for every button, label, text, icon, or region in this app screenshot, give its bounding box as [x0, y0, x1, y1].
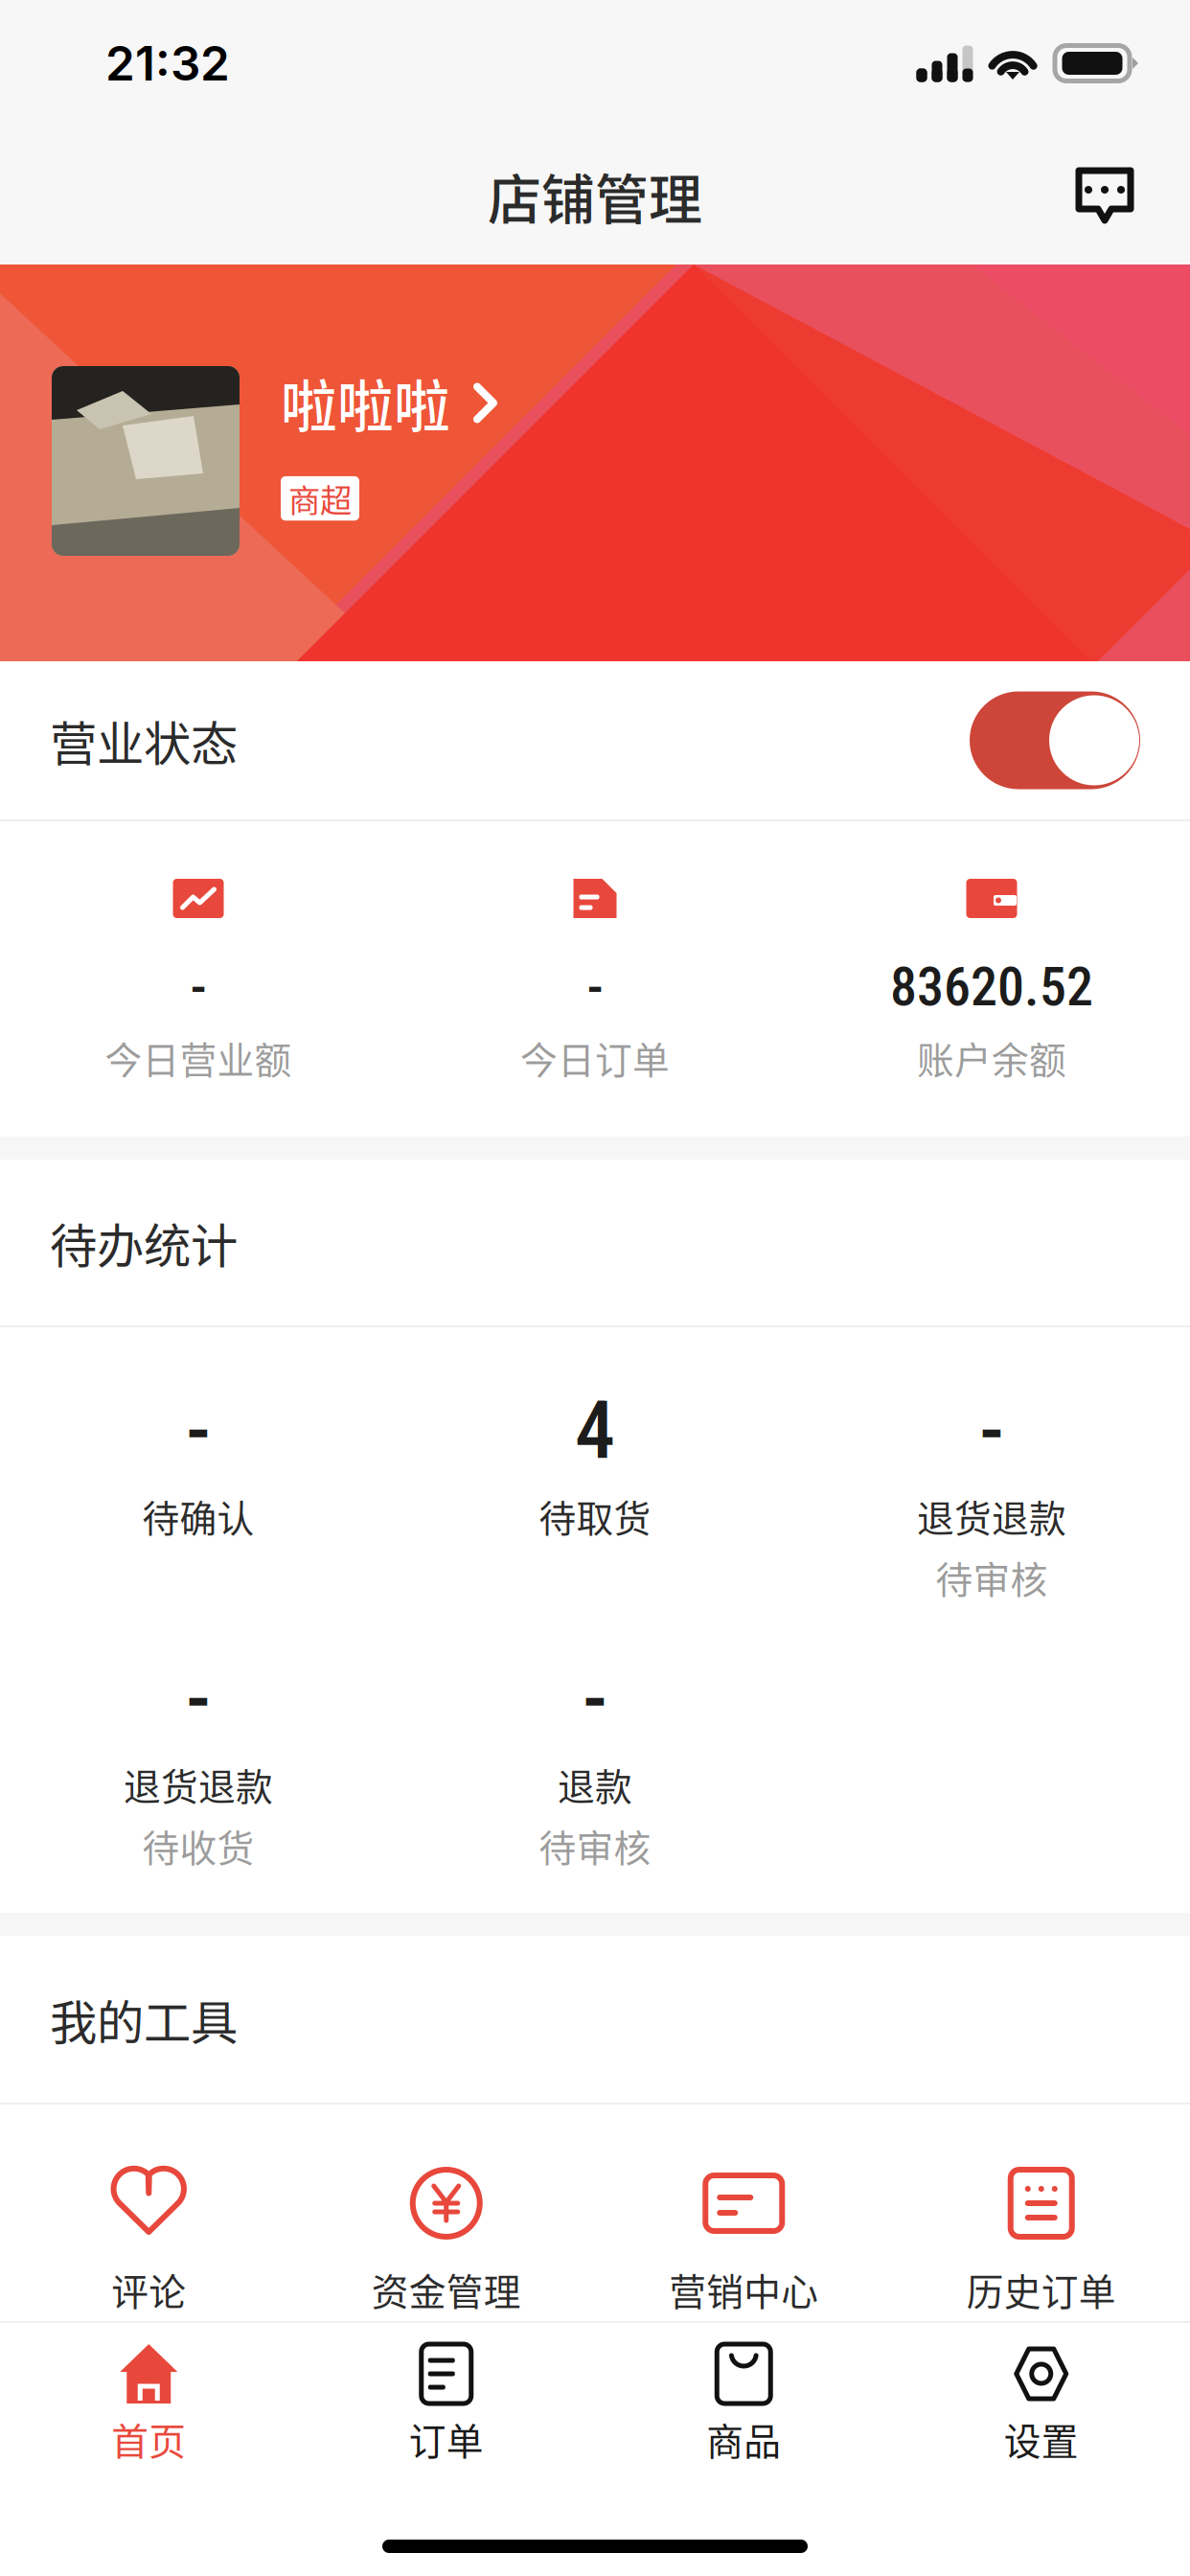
staticText: 退货退款: [124, 1758, 273, 1811]
button[interactable]: 设置: [892, 2323, 1190, 2497]
button[interactable]: 消息: [1048, 148, 1161, 243]
button[interactable]: -: [793, 1396, 1190, 1665]
staticText: 啦啦啦: [281, 362, 450, 444]
button[interactable]: 营业状态: [970, 691, 1140, 789]
staticText: 订单: [409, 2412, 484, 2466]
button[interactable]: 店铺头像: [52, 366, 240, 556]
button[interactable]: 啦啦啦: [281, 362, 497, 444]
staticText: 营业状态: [50, 706, 238, 775]
button[interactable]: -: [397, 821, 793, 1137]
staticText: 21:32: [105, 35, 230, 92]
staticText: 今日营业额: [105, 1031, 292, 1084]
staticText: 资金管理: [372, 2263, 521, 2316]
staticText: 待确认: [142, 1489, 254, 1543]
button[interactable]: 资金管理: [297, 2104, 595, 2321]
staticText: 待取货: [539, 1489, 651, 1543]
button[interactable]: -: [397, 1665, 793, 1856]
staticText: 待办统计: [50, 1208, 238, 1277]
button[interactable]: -: [0, 1396, 397, 1665]
staticText: 历史订单: [967, 2263, 1116, 2316]
staticText: 我的工具: [50, 1985, 238, 2053]
button[interactable]: 评论: [0, 2104, 297, 2321]
button[interactable]: 历史订单: [892, 2104, 1190, 2321]
staticText: 首页: [111, 2412, 186, 2466]
staticText: 商超: [288, 475, 352, 522]
staticText: 退货退款: [917, 1489, 1066, 1543]
staticText: 设置: [1004, 2412, 1079, 2466]
button[interactable]: -: [0, 1665, 397, 1856]
button[interactable]: 订单: [297, 2323, 595, 2497]
button[interactable]: 营销中心: [595, 2104, 892, 2321]
button[interactable]: 商品: [595, 2323, 892, 2497]
button[interactable]: -: [0, 821, 397, 1137]
staticText: 评论: [111, 2263, 186, 2316]
staticText: -: [186, 1383, 211, 1477]
staticText: -: [583, 1651, 607, 1745]
staticText: 4: [575, 1383, 615, 1477]
staticText: -: [587, 955, 603, 1018]
button[interactable]: 83620.52: [793, 821, 1190, 1137]
staticText: -: [979, 1383, 1004, 1477]
staticText: 商品: [706, 2412, 781, 2466]
button[interactable]: 首页: [0, 2323, 297, 2497]
staticText: 退款: [558, 1758, 632, 1811]
button[interactable]: 4: [397, 1396, 793, 1665]
staticText: 营销中心: [669, 2263, 818, 2316]
staticText: 店铺管理: [488, 157, 702, 234]
staticText: 待审核: [936, 1551, 1048, 1604]
staticText: 83620.52: [890, 955, 1093, 1018]
staticText: 待收货: [142, 1819, 254, 1873]
staticText: 今日订单: [520, 1031, 670, 1084]
staticText: -: [190, 955, 206, 1018]
staticText: 待审核: [539, 1819, 651, 1873]
staticText: -: [186, 1651, 211, 1745]
staticText: 账户余额: [917, 1031, 1066, 1084]
